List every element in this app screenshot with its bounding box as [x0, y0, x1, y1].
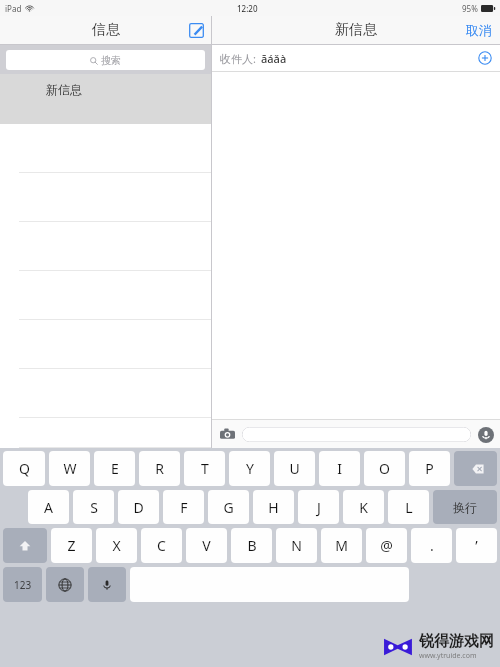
- button[interactable]: P: [409, 451, 450, 486]
- button[interactable]: R: [139, 451, 180, 486]
- staticText: O: [379, 459, 390, 478]
- staticText: L: [405, 498, 413, 517]
- button[interactable]: C: [141, 528, 182, 563]
- staticText: X: [112, 536, 121, 555]
- button[interactable]: 删除: [454, 451, 497, 486]
- staticText: www.ytruide.com: [419, 651, 477, 661]
- staticText: 信息: [92, 21, 120, 39]
- staticText: 锐得游戏网: [419, 632, 494, 651]
- button[interactable]: 新信息: [0, 74, 211, 124]
- button[interactable]: K: [343, 490, 384, 524]
- button[interactable]: ’: [456, 528, 497, 563]
- button[interactable]: V: [186, 528, 227, 563]
- button[interactable]: X: [96, 528, 137, 563]
- button[interactable]: Y: [229, 451, 270, 486]
- staticText: A: [44, 498, 53, 517]
- button[interactable]: O: [364, 451, 405, 486]
- staticText: T: [201, 459, 209, 478]
- staticText: H: [268, 498, 279, 517]
- staticText: U: [289, 459, 300, 478]
- button[interactable]: B: [231, 528, 272, 563]
- button[interactable]: Z: [51, 528, 92, 563]
- button[interactable]: [0, 173, 211, 222]
- staticText: 新信息: [335, 21, 377, 39]
- button[interactable]: T: [184, 451, 225, 486]
- button[interactable]: [0, 418, 211, 448]
- button[interactable]: A: [28, 490, 69, 524]
- button[interactable]: 新建信息: [181, 17, 211, 43]
- button[interactable]: N: [276, 528, 317, 563]
- button[interactable]: 切换键盘: [46, 567, 84, 602]
- staticText: 新信息: [46, 82, 82, 97]
- staticText: Y: [246, 459, 254, 478]
- button[interactable]: 语音输入: [88, 567, 126, 602]
- staticText: āáǎà: [261, 51, 287, 66]
- staticText: J: [317, 498, 321, 517]
- button[interactable]: [242, 427, 471, 442]
- staticText: Z: [67, 536, 76, 555]
- staticText: 123: [14, 578, 32, 592]
- staticText: 95%: [462, 3, 478, 14]
- staticText: B: [247, 536, 257, 555]
- staticText: F: [180, 498, 188, 517]
- button[interactable]: 取消: [466, 22, 492, 38]
- staticText: 搜索: [101, 54, 121, 67]
- button[interactable]: I: [319, 451, 360, 486]
- button[interactable]: 上档: [3, 528, 47, 563]
- button[interactable]: @: [366, 528, 407, 563]
- staticText: K: [359, 498, 368, 517]
- button[interactable]: G: [208, 490, 249, 524]
- staticText: M: [335, 536, 348, 555]
- staticText: ’: [475, 536, 478, 555]
- button[interactable]: M: [321, 528, 362, 563]
- button[interactable]: E: [94, 451, 135, 486]
- button[interactable]: D: [118, 490, 159, 524]
- button[interactable]: W: [49, 451, 90, 486]
- staticText: E: [111, 459, 119, 478]
- staticText: D: [133, 498, 144, 517]
- button[interactable]: 语音输入: [476, 425, 495, 444]
- button[interactable]: F: [163, 490, 204, 524]
- staticText: iPad: [5, 3, 22, 14]
- staticText: Q: [19, 459, 30, 478]
- staticText: S: [90, 498, 98, 517]
- staticText: G: [223, 498, 234, 517]
- button[interactable]: U: [274, 451, 315, 486]
- button[interactable]: 相机: [217, 424, 237, 444]
- staticText: C: [157, 536, 166, 555]
- staticText: N: [291, 536, 302, 555]
- button[interactable]: .: [411, 528, 452, 563]
- staticText: 换行: [453, 500, 477, 515]
- staticText: W: [63, 459, 77, 478]
- button[interactable]: [0, 222, 211, 271]
- staticText: .: [430, 536, 434, 555]
- staticText: @: [380, 536, 393, 555]
- button[interactable]: [0, 271, 211, 320]
- staticText: I: [337, 459, 342, 478]
- button[interactable]: [0, 320, 211, 369]
- button[interactable]: Q: [3, 451, 45, 486]
- button[interactable]: 123: [3, 567, 42, 602]
- button[interactable]: [0, 124, 211, 173]
- staticText: 12:20: [237, 3, 258, 14]
- staticText: R: [155, 459, 164, 478]
- staticText: V: [202, 536, 211, 555]
- staticText: 收件人:: [220, 51, 256, 66]
- button[interactable]: J: [298, 490, 339, 524]
- staticText: 取消: [466, 22, 492, 38]
- button[interactable]: L: [388, 490, 429, 524]
- staticText: P: [425, 459, 434, 478]
- button[interactable]: 换行: [433, 490, 497, 524]
- button[interactable]: 搜索: [6, 50, 205, 70]
- button[interactable]: 添加联系人: [476, 49, 494, 67]
- button[interactable]: H: [253, 490, 294, 524]
- button[interactable]: [0, 369, 211, 418]
- button[interactable]: S: [73, 490, 114, 524]
